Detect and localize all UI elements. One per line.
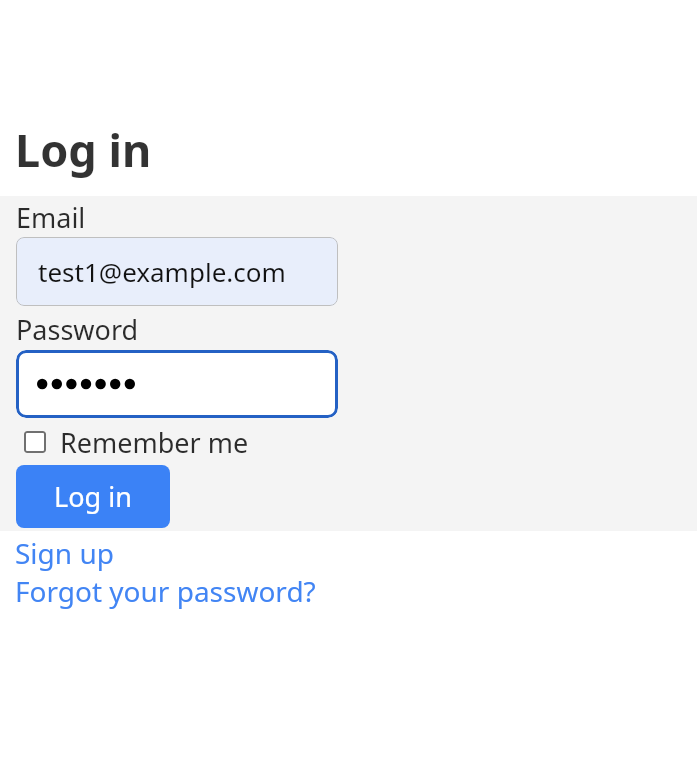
button[interactable]: test1@example.com	[16, 237, 338, 306]
button[interactable]: Sign up	[15, 534, 114, 572]
staticText: Password	[16, 311, 139, 348]
staticText: Sign up	[15, 534, 114, 572]
button[interactable]	[16, 350, 338, 418]
staticText: Log in	[54, 478, 132, 515]
button[interactable]: Log in	[16, 465, 170, 528]
staticText: Log in	[15, 119, 152, 180]
staticText: test1@example.com	[38, 254, 286, 289]
staticText: Email	[16, 199, 86, 236]
button[interactable]: Remember me	[24, 424, 249, 460]
staticText: Forgot your password?	[15, 572, 316, 610]
button[interactable]: Forgot your password?	[15, 572, 316, 610]
staticText: Remember me	[60, 424, 249, 460]
